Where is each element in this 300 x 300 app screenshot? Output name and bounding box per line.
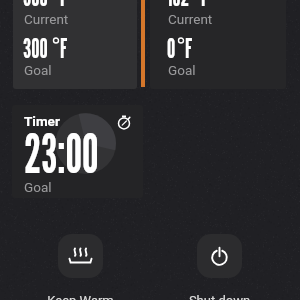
staticText: Goal: [168, 62, 196, 78]
staticText: F: [201, 0, 208, 12]
staticText: F: [60, 32, 67, 64]
staticText: 0: [167, 32, 176, 64]
staticText: Keep Warm: [40, 293, 121, 300]
button[interactable]: Stopwatch: [111, 110, 137, 136]
staticText: 23:00: [24, 122, 99, 186]
staticText: Goal: [24, 62, 52, 78]
staticText: Timer: [24, 113, 60, 129]
staticText: F: [60, 0, 67, 12]
button[interactable]: 300: [13, 0, 137, 89]
button[interactable]: Shut down: [197, 234, 242, 278]
staticText: F: [185, 32, 192, 64]
staticText: Current: [168, 11, 213, 27]
staticText: Goal: [24, 179, 52, 195]
button[interactable]: Timer: [12, 105, 143, 198]
staticText: Current: [24, 11, 69, 27]
staticText: 300: [23, 0, 48, 12]
staticText: 300: [23, 32, 48, 64]
staticText: Shut down: [179, 293, 260, 300]
button[interactable]: 152: [150, 0, 286, 89]
button[interactable]: Keep Warm: [58, 234, 103, 278]
staticText: 152: [167, 0, 190, 12]
